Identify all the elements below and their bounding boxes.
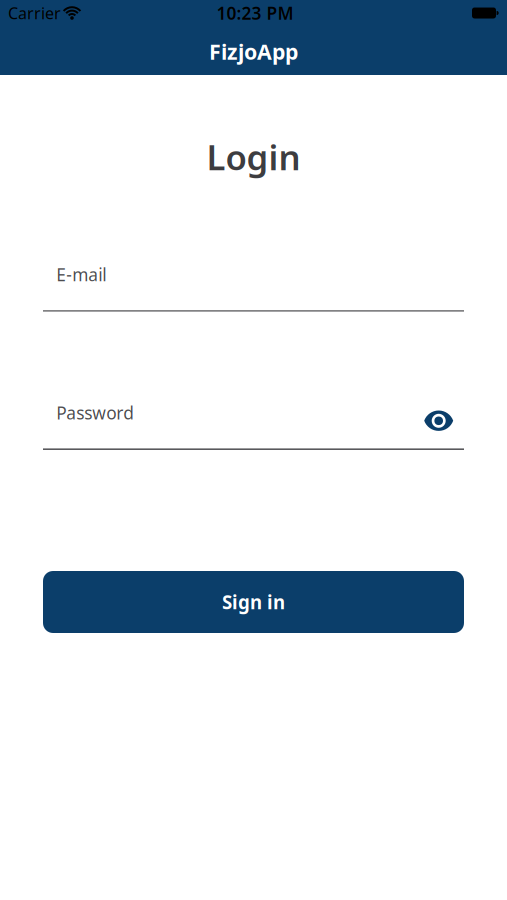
staticText: Login: [206, 134, 300, 180]
button[interactable]: Sign in: [43, 571, 464, 633]
staticText: Carrier: [8, 2, 61, 24]
staticText: FizjoApp: [209, 37, 298, 66]
button[interactable]: Show password: [424, 410, 453, 431]
staticText: 10:23 PM: [216, 1, 293, 24]
staticText: Password: [56, 401, 134, 424]
staticText: E-mail: [56, 263, 106, 286]
staticText: Sign in: [222, 590, 285, 614]
